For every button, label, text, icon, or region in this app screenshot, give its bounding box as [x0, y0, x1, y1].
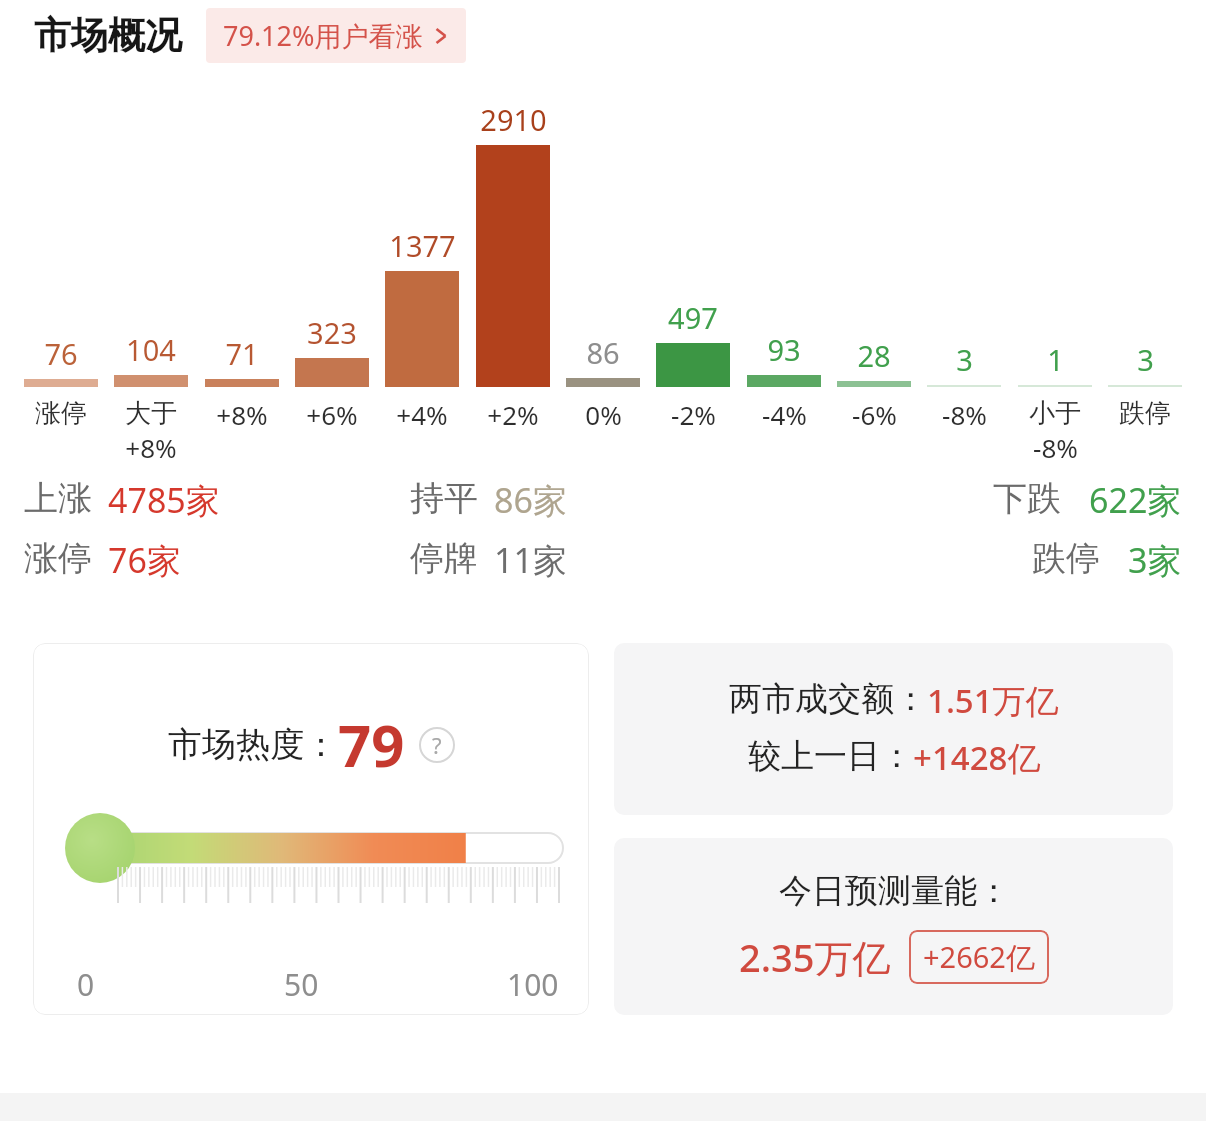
staticText: 100 [507, 964, 559, 1005]
staticText: -8% [1033, 430, 1078, 465]
staticText: 3家 [1128, 537, 1182, 583]
staticText: 小于 [1029, 397, 1081, 430]
staticText: +4% [396, 397, 448, 432]
staticText: -2% [671, 397, 716, 432]
staticText: 86家 [494, 477, 567, 523]
staticText: 跌停 [1119, 397, 1171, 430]
staticText: 跌停 [1032, 537, 1100, 580]
staticText: 11家 [494, 537, 567, 583]
staticText: 0% [585, 397, 622, 432]
staticText: +8% [216, 397, 268, 432]
staticText: 50 [284, 964, 319, 1005]
staticText: 大于 [125, 397, 177, 430]
staticText: ? [432, 730, 442, 760]
staticText: 2910 [480, 100, 547, 139]
staticText: 2.35万亿 [739, 931, 891, 983]
staticText: 1.51万亿 [927, 678, 1059, 723]
staticText: +1428亿 [913, 735, 1041, 780]
staticText: 79.12%用户看涨 [223, 17, 423, 54]
staticText: 76家 [108, 537, 181, 583]
staticText: 市场热度： [168, 723, 338, 766]
staticText: 市场概况 [34, 12, 182, 59]
staticText: 86 [586, 333, 620, 372]
staticText: 0 [77, 964, 95, 1005]
staticText: -6% [852, 397, 897, 432]
staticText: 622家 [1089, 477, 1182, 523]
staticText: +2662亿 [923, 937, 1035, 977]
staticText: 今日预测量能： [779, 870, 1010, 912]
staticText: 3 [956, 340, 973, 379]
button[interactable]: 帮助说明 [419, 727, 455, 763]
staticText: -4% [762, 397, 807, 432]
staticText: 79 [338, 705, 405, 784]
staticText: 28 [857, 336, 891, 375]
staticText: 104 [126, 330, 176, 369]
staticText: 3 [1137, 340, 1154, 379]
staticText: +2% [487, 397, 539, 432]
button[interactable]: 今日预测量能： [614, 838, 1173, 1015]
staticText: 71 [225, 334, 259, 373]
button[interactable]: 两市成交额： [614, 643, 1173, 815]
staticText: -8% [942, 397, 987, 432]
staticText: 两市成交额： [729, 678, 927, 720]
staticText: +8% [125, 430, 177, 465]
staticText: 497 [668, 298, 718, 337]
staticText: 76 [44, 334, 78, 373]
staticText: 较上一日： [748, 735, 913, 777]
staticText: 下跌 [993, 477, 1061, 520]
staticText: 涨停 [24, 537, 92, 580]
staticText: +6% [306, 397, 358, 432]
staticText: 1 [1047, 340, 1064, 379]
button[interactable]: 市场热度： [33, 643, 589, 1015]
button[interactable]: 79.12%用户看涨 [206, 8, 466, 63]
staticText: 323 [307, 313, 357, 352]
staticText: 涨停 [35, 397, 87, 430]
staticText: 停牌 [410, 537, 478, 580]
staticText: 1377 [389, 226, 456, 265]
staticText: 上涨 [24, 477, 92, 520]
staticText: 93 [767, 330, 801, 369]
staticText: 4785家 [108, 477, 220, 523]
staticText: 持平 [410, 477, 478, 520]
